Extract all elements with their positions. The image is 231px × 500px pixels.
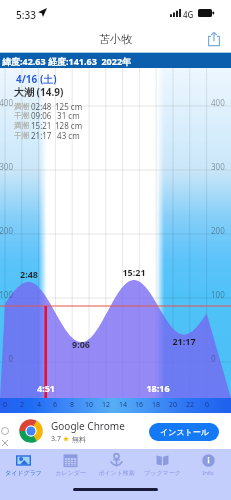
- staticText: 100: [211, 289, 225, 300]
- staticText: 0: [211, 353, 216, 364]
- staticText: 6: [47, 400, 63, 410]
- staticText: 200: [211, 225, 225, 236]
- staticText: Info: [202, 469, 214, 477]
- staticText: 09:06: [31, 110, 52, 121]
- staticText: 2: [14, 400, 30, 410]
- button[interactable]: Info: [185, 449, 231, 477]
- staticText: 4:51: [24, 382, 68, 394]
- staticText: 22: [182, 400, 198, 410]
- staticText: 干潮: [14, 131, 29, 140]
- staticText: ポイント検索: [98, 469, 135, 477]
- staticText: 43 cm: [55, 130, 80, 141]
- staticText: 2:48: [7, 268, 51, 280]
- staticText: 400: [0, 97, 13, 108]
- staticText: 満潮: [14, 121, 29, 130]
- staticText: 21:17: [31, 130, 52, 141]
- staticText: 16: [131, 400, 147, 410]
- staticText: 9:06: [59, 338, 103, 350]
- staticText: 4/16 (土): [16, 72, 57, 86]
- staticText: 0: [199, 400, 215, 410]
- staticText: 大潮 (14.9): [14, 85, 64, 99]
- staticText: 15:21: [31, 120, 52, 131]
- staticText: 400: [211, 97, 225, 108]
- staticText: 125 cm: [55, 101, 83, 112]
- staticText: 満潮: [14, 102, 29, 111]
- staticText: 10: [81, 400, 97, 410]
- staticText: 8: [64, 400, 80, 410]
- staticText: 緯度:42.63 経度:141.63 2022年: [2, 55, 132, 67]
- staticText: 31 cm: [55, 110, 80, 121]
- staticText: 4: [31, 400, 47, 410]
- staticText: 0: [0, 353, 13, 364]
- staticText: Google Chrome: [51, 419, 125, 433]
- staticText: インストール: [160, 427, 209, 437]
- staticText: 無料: [72, 435, 86, 444]
- staticText: 12: [98, 400, 114, 410]
- staticText: ブックマーク: [144, 469, 181, 477]
- button[interactable]: Share: [205, 30, 223, 48]
- staticText: 128 cm: [55, 120, 83, 131]
- staticText: 20: [165, 400, 181, 410]
- button[interactable]: カレンダー: [47, 449, 93, 477]
- button[interactable]: タイドグラフ: [0, 449, 47, 477]
- staticText: 4G: [183, 9, 194, 20]
- staticText: 15:21: [112, 266, 156, 278]
- staticText: 14: [115, 400, 131, 410]
- staticText: タイドグラフ: [5, 469, 42, 477]
- staticText: 干潮: [14, 111, 29, 120]
- staticText: 苫小牧: [99, 32, 132, 46]
- staticText: 300: [211, 161, 225, 172]
- staticText: 300: [0, 161, 13, 172]
- staticText: 100: [0, 289, 13, 300]
- staticText: 18: [148, 400, 164, 410]
- button[interactable]: ポイント検索: [93, 449, 139, 477]
- staticText: 200: [0, 225, 13, 236]
- staticText: 3.7: [51, 434, 61, 444]
- button[interactable]: インストール: [149, 423, 219, 441]
- button[interactable]: ブックマーク: [139, 449, 185, 477]
- staticText: 02:48: [31, 101, 52, 112]
- staticText: 21:17: [162, 335, 206, 347]
- staticText: カレンダー: [55, 469, 86, 477]
- staticText: 0: [0, 400, 13, 410]
- staticText: 18:16: [136, 382, 180, 394]
- staticText: 5:33: [16, 8, 36, 22]
